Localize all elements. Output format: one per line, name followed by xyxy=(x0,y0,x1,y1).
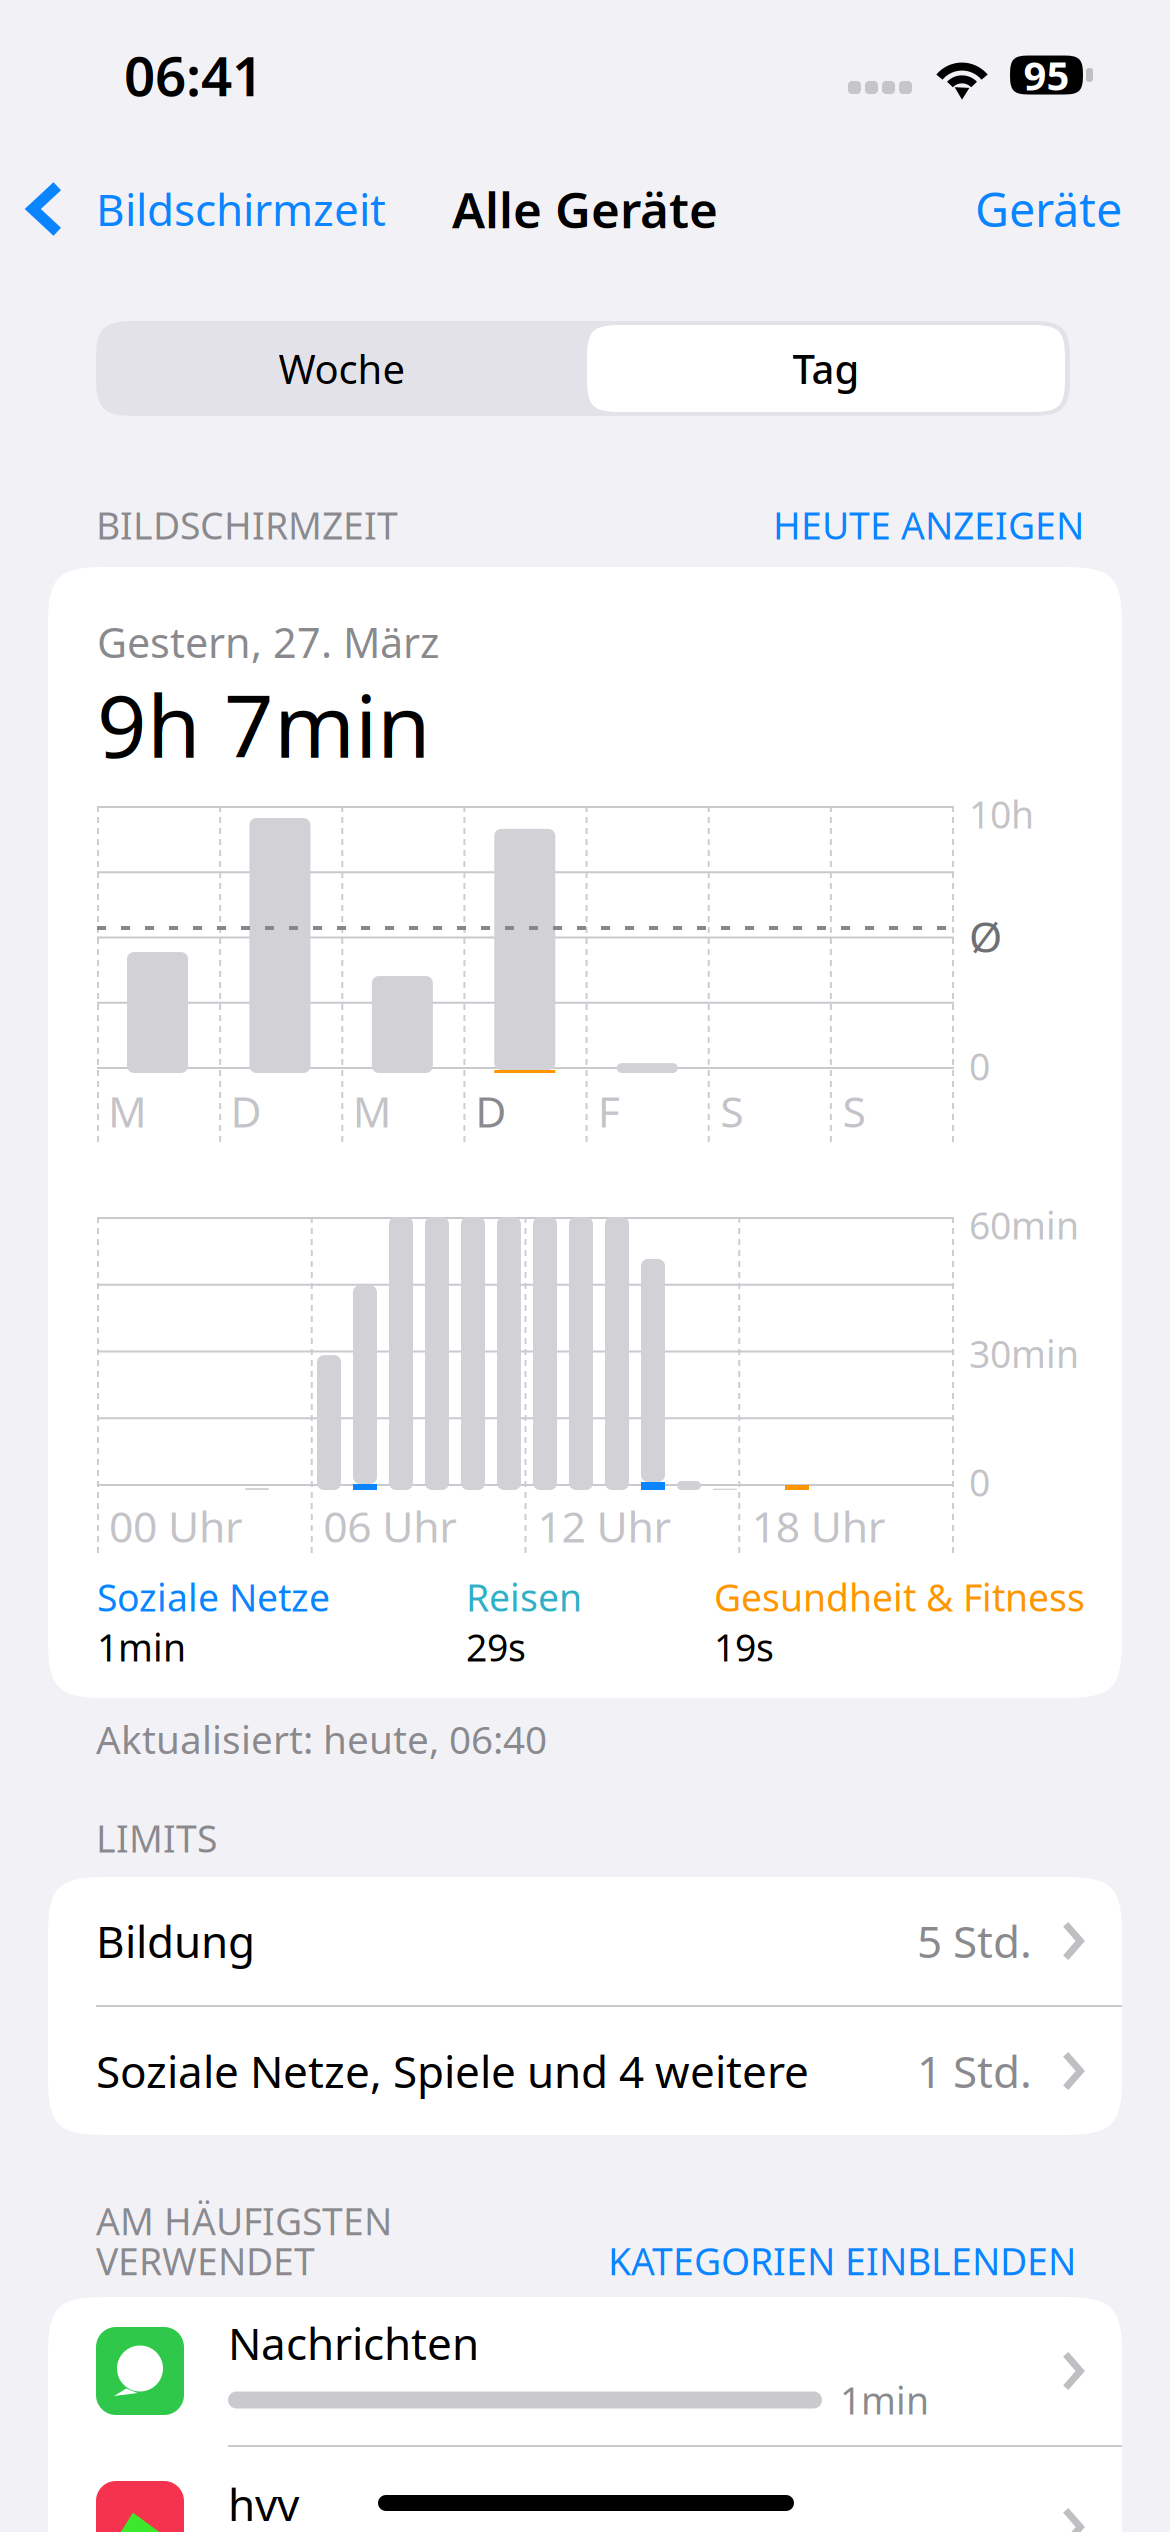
button[interactable]: Nachrichten xyxy=(48,2297,1122,2445)
staticText: 95 xyxy=(1023,48,1069,101)
staticText: HEUTE ANZEIGEN xyxy=(773,500,1084,550)
staticText: S xyxy=(720,1083,743,1139)
staticText: 30min xyxy=(969,1329,1079,1378)
button[interactable]: Bildschirmzeit xyxy=(0,150,386,268)
staticText: 06:41 xyxy=(124,39,263,111)
staticText: 1min xyxy=(97,1622,186,1672)
button[interactable]: KATEGORIEN EINBLENDEN xyxy=(608,2196,1076,2276)
staticText: Aktualisiert: heute, 06:40 xyxy=(96,1713,547,1765)
staticText: Gesundheit & Fitness xyxy=(714,1572,1085,1622)
button[interactable]: hvv xyxy=(48,2447,1122,2532)
staticText: VERWENDET xyxy=(96,2236,315,2286)
staticText: 1 Std. xyxy=(917,2042,1032,2100)
staticText: Reisen xyxy=(466,1572,582,1622)
staticText: LIMITS xyxy=(96,1813,217,1863)
staticText: 60min xyxy=(969,1200,1079,1250)
button[interactable]: Geräte xyxy=(975,150,1170,268)
button[interactable]: Bildung xyxy=(48,1877,1122,2005)
staticText: Bildschirmzeit xyxy=(96,180,386,238)
staticText: Bildung xyxy=(96,1912,255,1970)
staticText: AM HÄUFIGSTEN xyxy=(96,2196,392,2246)
staticText: 12 Uhr xyxy=(537,1498,671,1554)
button[interactable]: HEUTE ANZEIGEN xyxy=(773,500,1084,550)
staticText: D xyxy=(475,1083,506,1139)
staticText: 9h 7min xyxy=(97,666,431,782)
staticText: Gestern, 27. März xyxy=(97,615,439,669)
button[interactable]: Tag xyxy=(587,325,1065,412)
staticText: 06 Uhr xyxy=(323,1498,457,1554)
staticText: Alle Geräte xyxy=(452,176,718,242)
staticText: Nachrichten xyxy=(228,2314,479,2372)
staticText: Tag xyxy=(792,342,859,395)
staticText: 1min xyxy=(840,2375,929,2425)
staticText: F xyxy=(598,1083,620,1139)
staticText: Soziale Netze xyxy=(97,1572,330,1622)
staticText: Ø xyxy=(969,908,1002,964)
staticText: 0 xyxy=(969,1041,990,1091)
staticText: Soziale Netze, Spiele und 4 weitere xyxy=(96,2042,809,2100)
staticText: 29s xyxy=(466,1622,526,1672)
staticText: 10h xyxy=(969,789,1034,839)
staticText: S xyxy=(843,1083,866,1139)
button[interactable]: Soziale Netze, Spiele und 4 weitere xyxy=(48,2007,1122,2135)
staticText: hvv xyxy=(228,2475,299,2532)
staticText: 0 xyxy=(969,1457,990,1507)
button[interactable]: Woche xyxy=(97,321,587,416)
staticText: BILDSCHIRMZEIT xyxy=(96,500,398,550)
staticText: 19s xyxy=(714,1622,774,1672)
staticText: Woche xyxy=(278,342,405,395)
staticText: 00 Uhr xyxy=(109,1498,243,1554)
staticText: Geräte xyxy=(975,178,1122,240)
staticText: 5 Std. xyxy=(917,1912,1032,1970)
staticText: M xyxy=(353,1083,392,1139)
staticText: KATEGORIEN EINBLENDEN xyxy=(608,2236,1076,2286)
staticText: 18 Uhr xyxy=(752,1498,886,1554)
staticText: D xyxy=(230,1083,261,1139)
staticText: M xyxy=(108,1083,147,1139)
